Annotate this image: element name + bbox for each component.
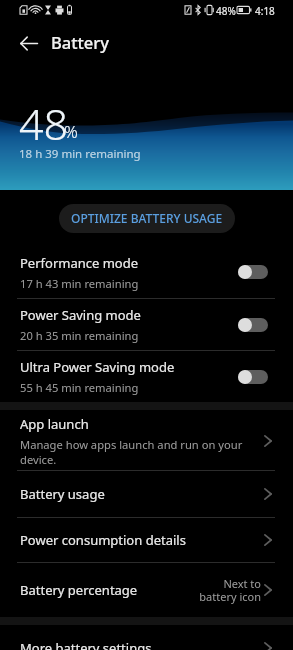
staticText: Battery percentage: [20, 581, 138, 599]
staticText: %: [64, 120, 78, 143]
button[interactable]: Battery percentage: [0, 563, 293, 617]
staticText: Next to battery icon: [199, 576, 261, 604]
button[interactable]: Performance mode: [0, 246, 293, 298]
button[interactable]: Power consumption details: [0, 518, 293, 562]
staticText: Ultra Power Saving mode: [20, 358, 175, 376]
staticText: 4:18: [255, 4, 275, 18]
staticText: Power Saving mode: [20, 306, 141, 324]
button[interactable]: Battery usage: [0, 471, 293, 517]
staticText: 17 h 43 min remaining: [20, 276, 139, 291]
button[interactable]: OPTIMIZE BATTERY USAGE: [59, 204, 235, 233]
staticText: 48: [19, 94, 69, 153]
staticText: More battery settings: [20, 639, 152, 650]
button[interactable]: Power Saving mode: [0, 299, 293, 350]
staticText: Battery: [51, 31, 110, 53]
staticText: App launch: [20, 415, 89, 433]
button[interactable]: More battery settings: [0, 625, 293, 650]
staticText: 48%: [216, 4, 236, 18]
staticText: 55 h 45 min remaining: [20, 380, 139, 395]
button[interactable]: Ultra Power Saving mode: [0, 351, 293, 402]
button[interactable]: Back: [9, 23, 49, 63]
staticText: 20 h 35 min remaining: [20, 328, 139, 343]
staticText: Manage how apps launch and run on your d…: [20, 437, 259, 467]
staticText: Power consumption details: [20, 531, 186, 549]
staticText: Battery usage: [20, 485, 105, 503]
staticText: Performance mode: [20, 254, 139, 272]
button[interactable]: App launch: [0, 410, 293, 471]
staticText: OPTIMIZE BATTERY USAGE: [71, 210, 223, 226]
staticText: 18 h 39 min remaining: [19, 146, 141, 162]
